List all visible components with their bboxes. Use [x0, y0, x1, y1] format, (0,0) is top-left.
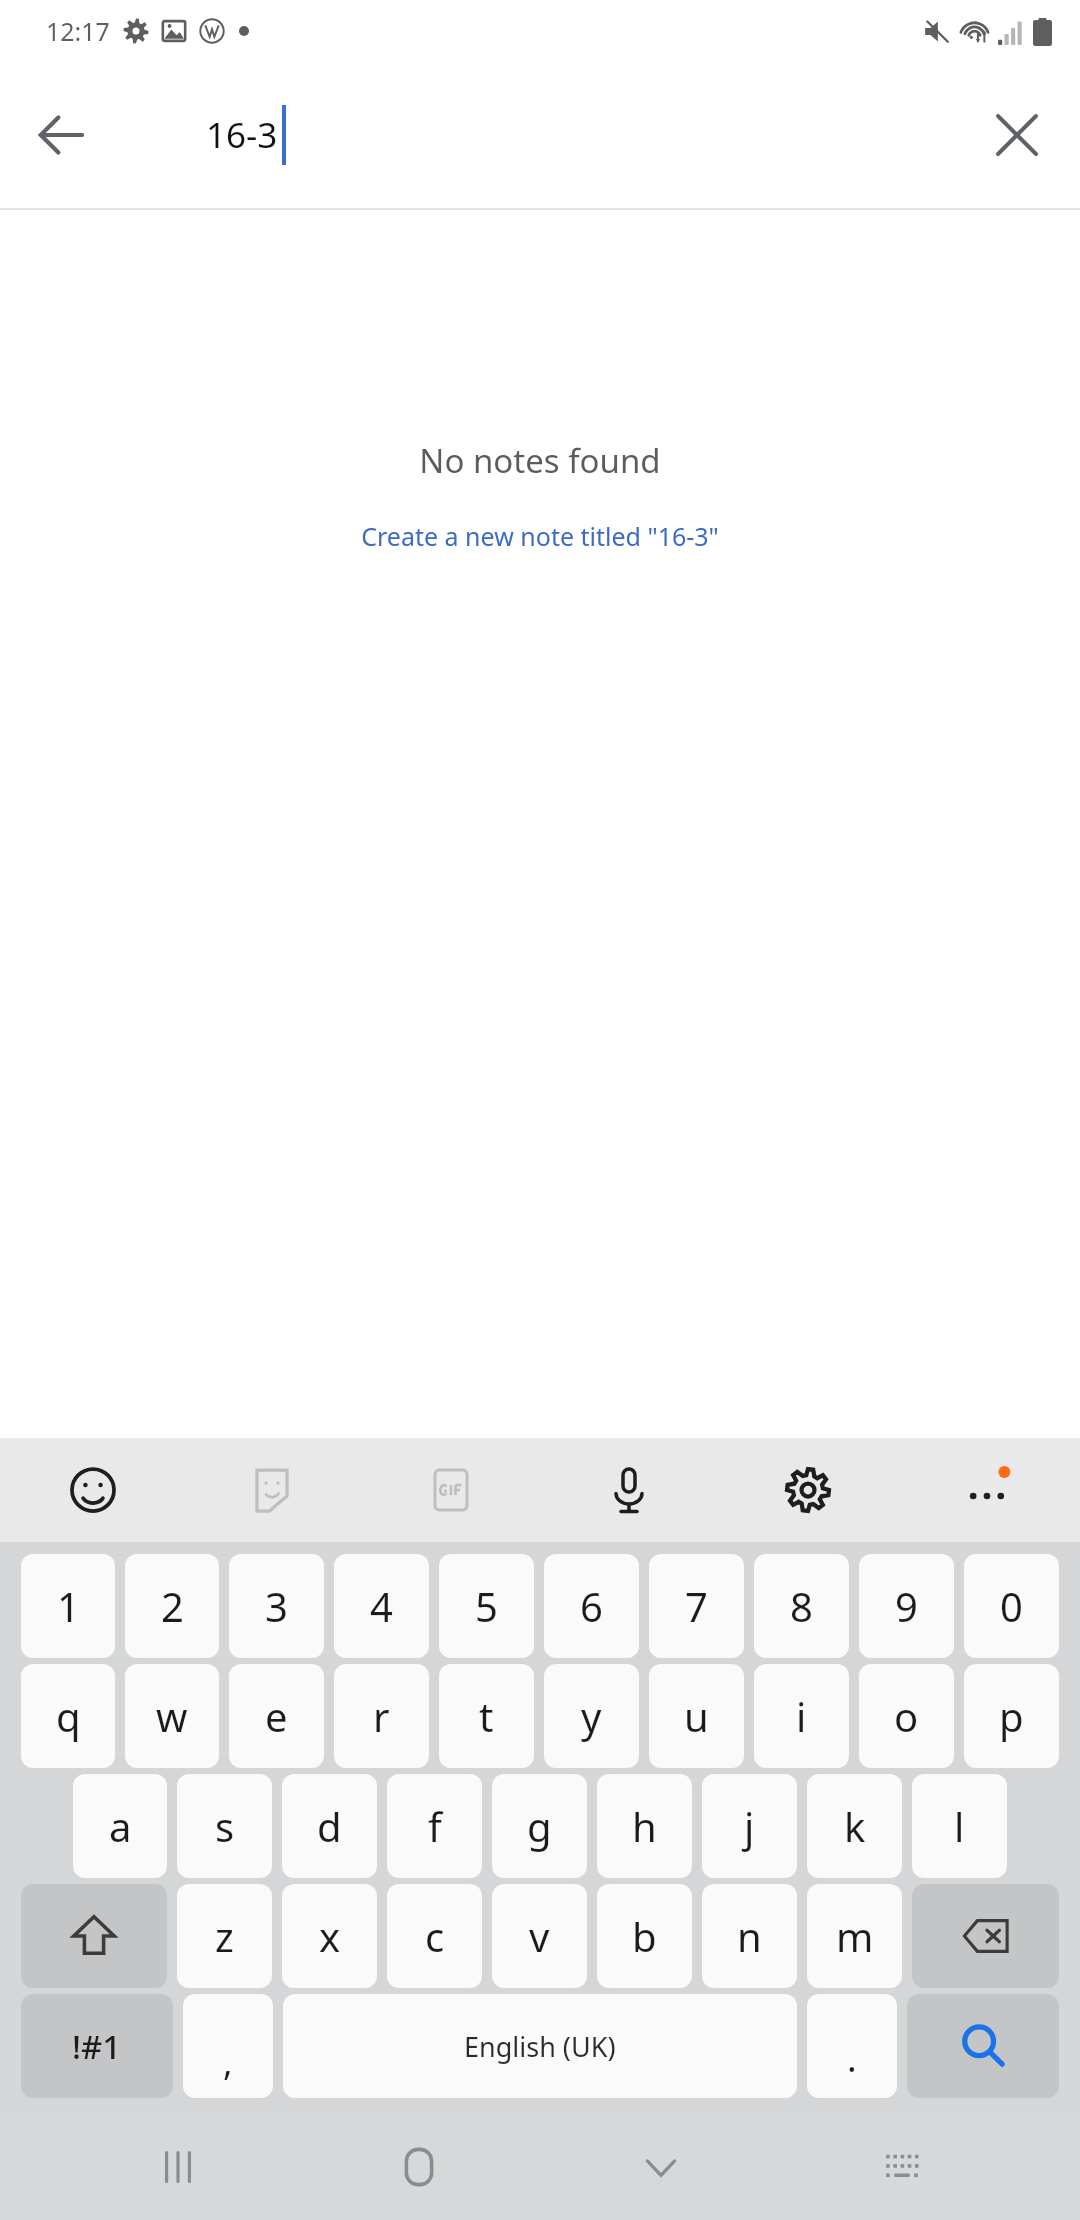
button[interactable]: Clear search	[974, 92, 1060, 178]
staticText: x	[319, 1909, 341, 1963]
button[interactable]: j	[702, 1774, 797, 1878]
button[interactable]: 9	[859, 1554, 954, 1658]
staticText: v	[529, 1909, 550, 1963]
button[interactable]: 4	[334, 1554, 429, 1658]
staticText: m	[836, 1909, 874, 1963]
button[interactable]: e	[229, 1664, 324, 1768]
staticText: 6	[580, 1579, 603, 1633]
button[interactable]: Backspace	[912, 1884, 1059, 1988]
staticText: n	[737, 1909, 762, 1963]
button[interactable]: p	[964, 1664, 1059, 1768]
staticText: ,	[223, 2037, 233, 2086]
button[interactable]: b	[597, 1884, 692, 1988]
staticText: 12:17	[46, 14, 110, 48]
button[interactable]: Create a new note titled "16-3"	[351, 513, 729, 559]
button[interactable]: More options	[952, 1455, 1022, 1525]
staticText: e	[265, 1689, 288, 1743]
button[interactable]: a	[73, 1774, 167, 1878]
button[interactable]: 8	[754, 1554, 849, 1658]
button[interactable]: h	[597, 1774, 692, 1878]
staticText: s	[215, 1799, 235, 1853]
button[interactable]: 7	[649, 1554, 744, 1658]
staticText: z	[215, 1909, 234, 1963]
button[interactable]: Back	[18, 92, 104, 178]
staticText: o	[894, 1689, 919, 1743]
button[interactable]: Home	[371, 2119, 467, 2215]
staticText: 9	[895, 1579, 918, 1633]
button[interactable]: .	[807, 1994, 897, 2098]
staticText: w	[156, 1689, 188, 1743]
button[interactable]: n	[702, 1884, 797, 1988]
button[interactable]: v	[492, 1884, 587, 1988]
button[interactable]: GIF	[416, 1455, 486, 1525]
staticText: q	[56, 1689, 81, 1743]
staticText: y	[581, 1689, 602, 1743]
staticText: h	[632, 1799, 657, 1853]
button[interactable]: 2	[125, 1554, 219, 1658]
staticText: No notes found	[419, 438, 661, 483]
staticText: u	[684, 1689, 709, 1743]
staticText: 4	[370, 1579, 393, 1633]
button[interactable]: z	[177, 1884, 272, 1988]
staticText: 16-3	[206, 111, 278, 159]
staticText: g	[527, 1799, 552, 1853]
button[interactable]: 0	[964, 1554, 1059, 1658]
button[interactable]: y	[544, 1664, 639, 1768]
button[interactable]: u	[649, 1664, 744, 1768]
staticText: 3	[265, 1579, 288, 1633]
button[interactable]: Keyboard settings	[773, 1455, 843, 1525]
staticText: c	[425, 1909, 445, 1963]
button[interactable]: r	[334, 1664, 429, 1768]
button[interactable]: g	[492, 1774, 587, 1878]
button[interactable]: Hide keyboard	[613, 2119, 709, 2215]
button[interactable]: Voice input	[594, 1455, 664, 1525]
button[interactable]: t	[439, 1664, 534, 1768]
button[interactable]: w	[125, 1664, 219, 1768]
staticText: 1	[57, 1579, 80, 1633]
staticText: p	[999, 1689, 1024, 1743]
button[interactable]: Emoji	[58, 1455, 128, 1525]
staticText: t	[479, 1689, 494, 1743]
staticText: f	[428, 1799, 442, 1853]
staticText: .	[847, 2034, 857, 2083]
staticText: 0	[1000, 1579, 1023, 1633]
button[interactable]: Shift	[21, 1884, 167, 1988]
button[interactable]: k	[807, 1774, 902, 1878]
button[interactable]: 6	[544, 1554, 639, 1658]
staticText: English (UK)	[464, 2028, 616, 2065]
button[interactable]: 5	[439, 1554, 534, 1658]
button[interactable]: d	[282, 1774, 377, 1878]
staticText: !#1	[72, 2024, 122, 2069]
button[interactable]: i	[754, 1664, 849, 1768]
button[interactable]: Search	[907, 1994, 1059, 2098]
staticText: r	[373, 1689, 390, 1743]
staticText: j	[744, 1799, 755, 1853]
staticText: k	[844, 1799, 866, 1853]
staticText: Create a new note titled "16-3"	[361, 519, 719, 553]
button[interactable]: 3	[229, 1554, 324, 1658]
staticText: a	[109, 1799, 132, 1853]
staticText: 7	[685, 1579, 708, 1633]
button[interactable]: l	[912, 1774, 1007, 1878]
staticText: d	[317, 1799, 342, 1853]
button[interactable]: s	[177, 1774, 272, 1878]
button[interactable]: ,	[183, 1994, 273, 2098]
button[interactable]: 1	[21, 1554, 115, 1658]
button[interactable]: English (UK)	[283, 1994, 797, 2098]
button[interactable]: f	[387, 1774, 482, 1878]
staticText: b	[632, 1909, 657, 1963]
button[interactable]: Change keyboard	[854, 2119, 950, 2215]
button[interactable]: Recents	[130, 2119, 226, 2215]
button[interactable]: m	[807, 1884, 902, 1988]
button[interactable]: c	[387, 1884, 482, 1988]
staticText: l	[954, 1799, 965, 1853]
staticText: i	[796, 1689, 807, 1743]
button[interactable]: q	[21, 1664, 115, 1768]
button[interactable]: o	[859, 1664, 954, 1768]
button[interactable]: x	[282, 1884, 377, 1988]
button[interactable]: !#1	[21, 1994, 173, 2098]
staticText: 2	[161, 1579, 184, 1633]
staticText: 5	[475, 1579, 498, 1633]
staticText: 8	[790, 1579, 813, 1633]
button[interactable]: Stickers	[237, 1455, 307, 1525]
